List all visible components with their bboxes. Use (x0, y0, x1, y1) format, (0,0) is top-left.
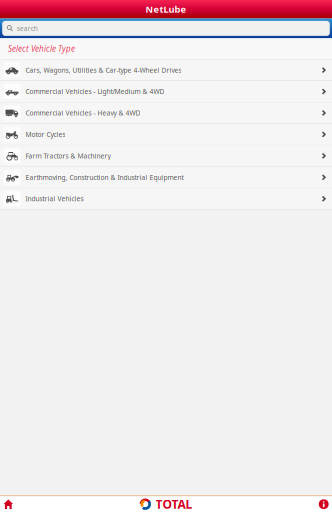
staticText: Commercial Vehicles - Heavy & 4WD (25, 108, 140, 117)
staticText: Cars, Wagons, Utilities & Car-type 4-Whe… (25, 66, 181, 74)
staticText: Motor Cycles (25, 130, 65, 139)
staticText: Earthmoving, Construction & Industrial E… (25, 173, 183, 182)
button[interactable]: Information (305, 496, 332, 512)
button[interactable]: Industrial Vehicles (0, 188, 332, 209)
staticText: Commercial Vehicles - Light/Medium & 4WD (25, 87, 164, 96)
staticText: NetLube (145, 3, 186, 15)
button[interactable]: Cars, Wagons, Utilities & Car-type 4-Whe… (0, 60, 332, 80)
button[interactable]: Home (0, 496, 28, 512)
staticText: Industrial Vehicles (25, 194, 83, 203)
button[interactable]: Farm Tractors & Machinery (0, 145, 332, 166)
button[interactable]: Commercial Vehicles - Heavy & 4WD (0, 102, 332, 123)
button[interactable]: Commercial Vehicles - Light/Medium & 4WD (0, 81, 332, 102)
staticText: TOTAL (156, 496, 193, 512)
staticText: Select Vehicle Type (8, 43, 75, 54)
button[interactable]: Motor Cycles (0, 124, 332, 145)
button[interactable]: Total home (140, 496, 193, 512)
button[interactable]: Earthmoving, Construction & Industrial E… (0, 167, 332, 188)
staticText: Farm Tractors & Machinery (25, 151, 110, 160)
staticText: search (17, 24, 38, 33)
